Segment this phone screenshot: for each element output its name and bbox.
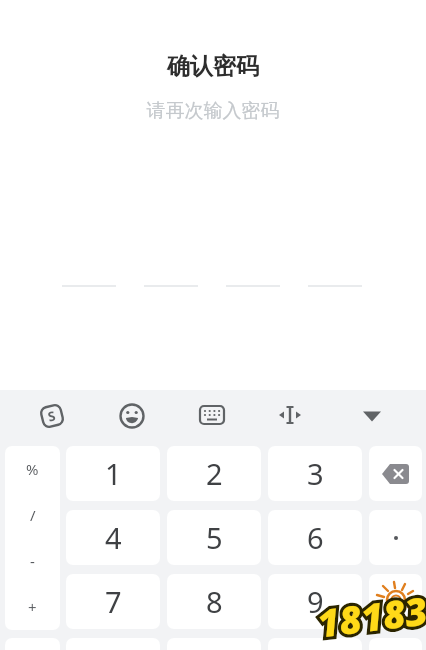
button[interactable]: 9 bbox=[268, 574, 362, 629]
button[interactable] bbox=[358, 402, 386, 430]
staticText: S bbox=[46, 406, 58, 426]
button[interactable] bbox=[118, 402, 146, 430]
staticText: 18183 bbox=[314, 583, 426, 648]
staticText: 5 bbox=[206, 518, 223, 557]
staticText: 3 bbox=[307, 454, 324, 493]
staticText: 7 bbox=[105, 582, 122, 621]
button[interactable]: 1 bbox=[66, 446, 160, 501]
button[interactable]: 7 bbox=[66, 574, 160, 629]
button[interactable]: % bbox=[5, 446, 60, 630]
staticText: / bbox=[30, 505, 36, 525]
button[interactable]: 2 bbox=[167, 446, 261, 501]
staticText: + bbox=[28, 597, 37, 617]
button[interactable] bbox=[369, 574, 422, 629]
button[interactable] bbox=[276, 401, 304, 429]
button[interactable] bbox=[369, 510, 422, 565]
button[interactable] bbox=[369, 446, 422, 501]
button[interactable]: 4 bbox=[66, 510, 160, 565]
staticText: 2 bbox=[206, 454, 223, 493]
button[interactable]: S bbox=[38, 402, 66, 430]
staticText: 确认密码 bbox=[0, 52, 426, 81]
staticText: 18183 bbox=[314, 583, 426, 648]
button[interactable] bbox=[198, 401, 226, 429]
button[interactable]: 3 bbox=[268, 446, 362, 501]
staticText: 9 bbox=[307, 582, 324, 621]
staticText: 请再次输入密码 bbox=[0, 99, 426, 123]
staticText: 1 bbox=[105, 454, 122, 493]
button[interactable]: 6 bbox=[268, 510, 362, 565]
staticText: 4 bbox=[105, 518, 122, 557]
button[interactable]: 5 bbox=[167, 510, 261, 565]
staticText: 8 bbox=[206, 582, 223, 621]
button[interactable]: 8 bbox=[167, 574, 261, 629]
staticText: 6 bbox=[307, 518, 324, 557]
staticText: - bbox=[30, 551, 35, 571]
staticText: % bbox=[26, 459, 39, 479]
